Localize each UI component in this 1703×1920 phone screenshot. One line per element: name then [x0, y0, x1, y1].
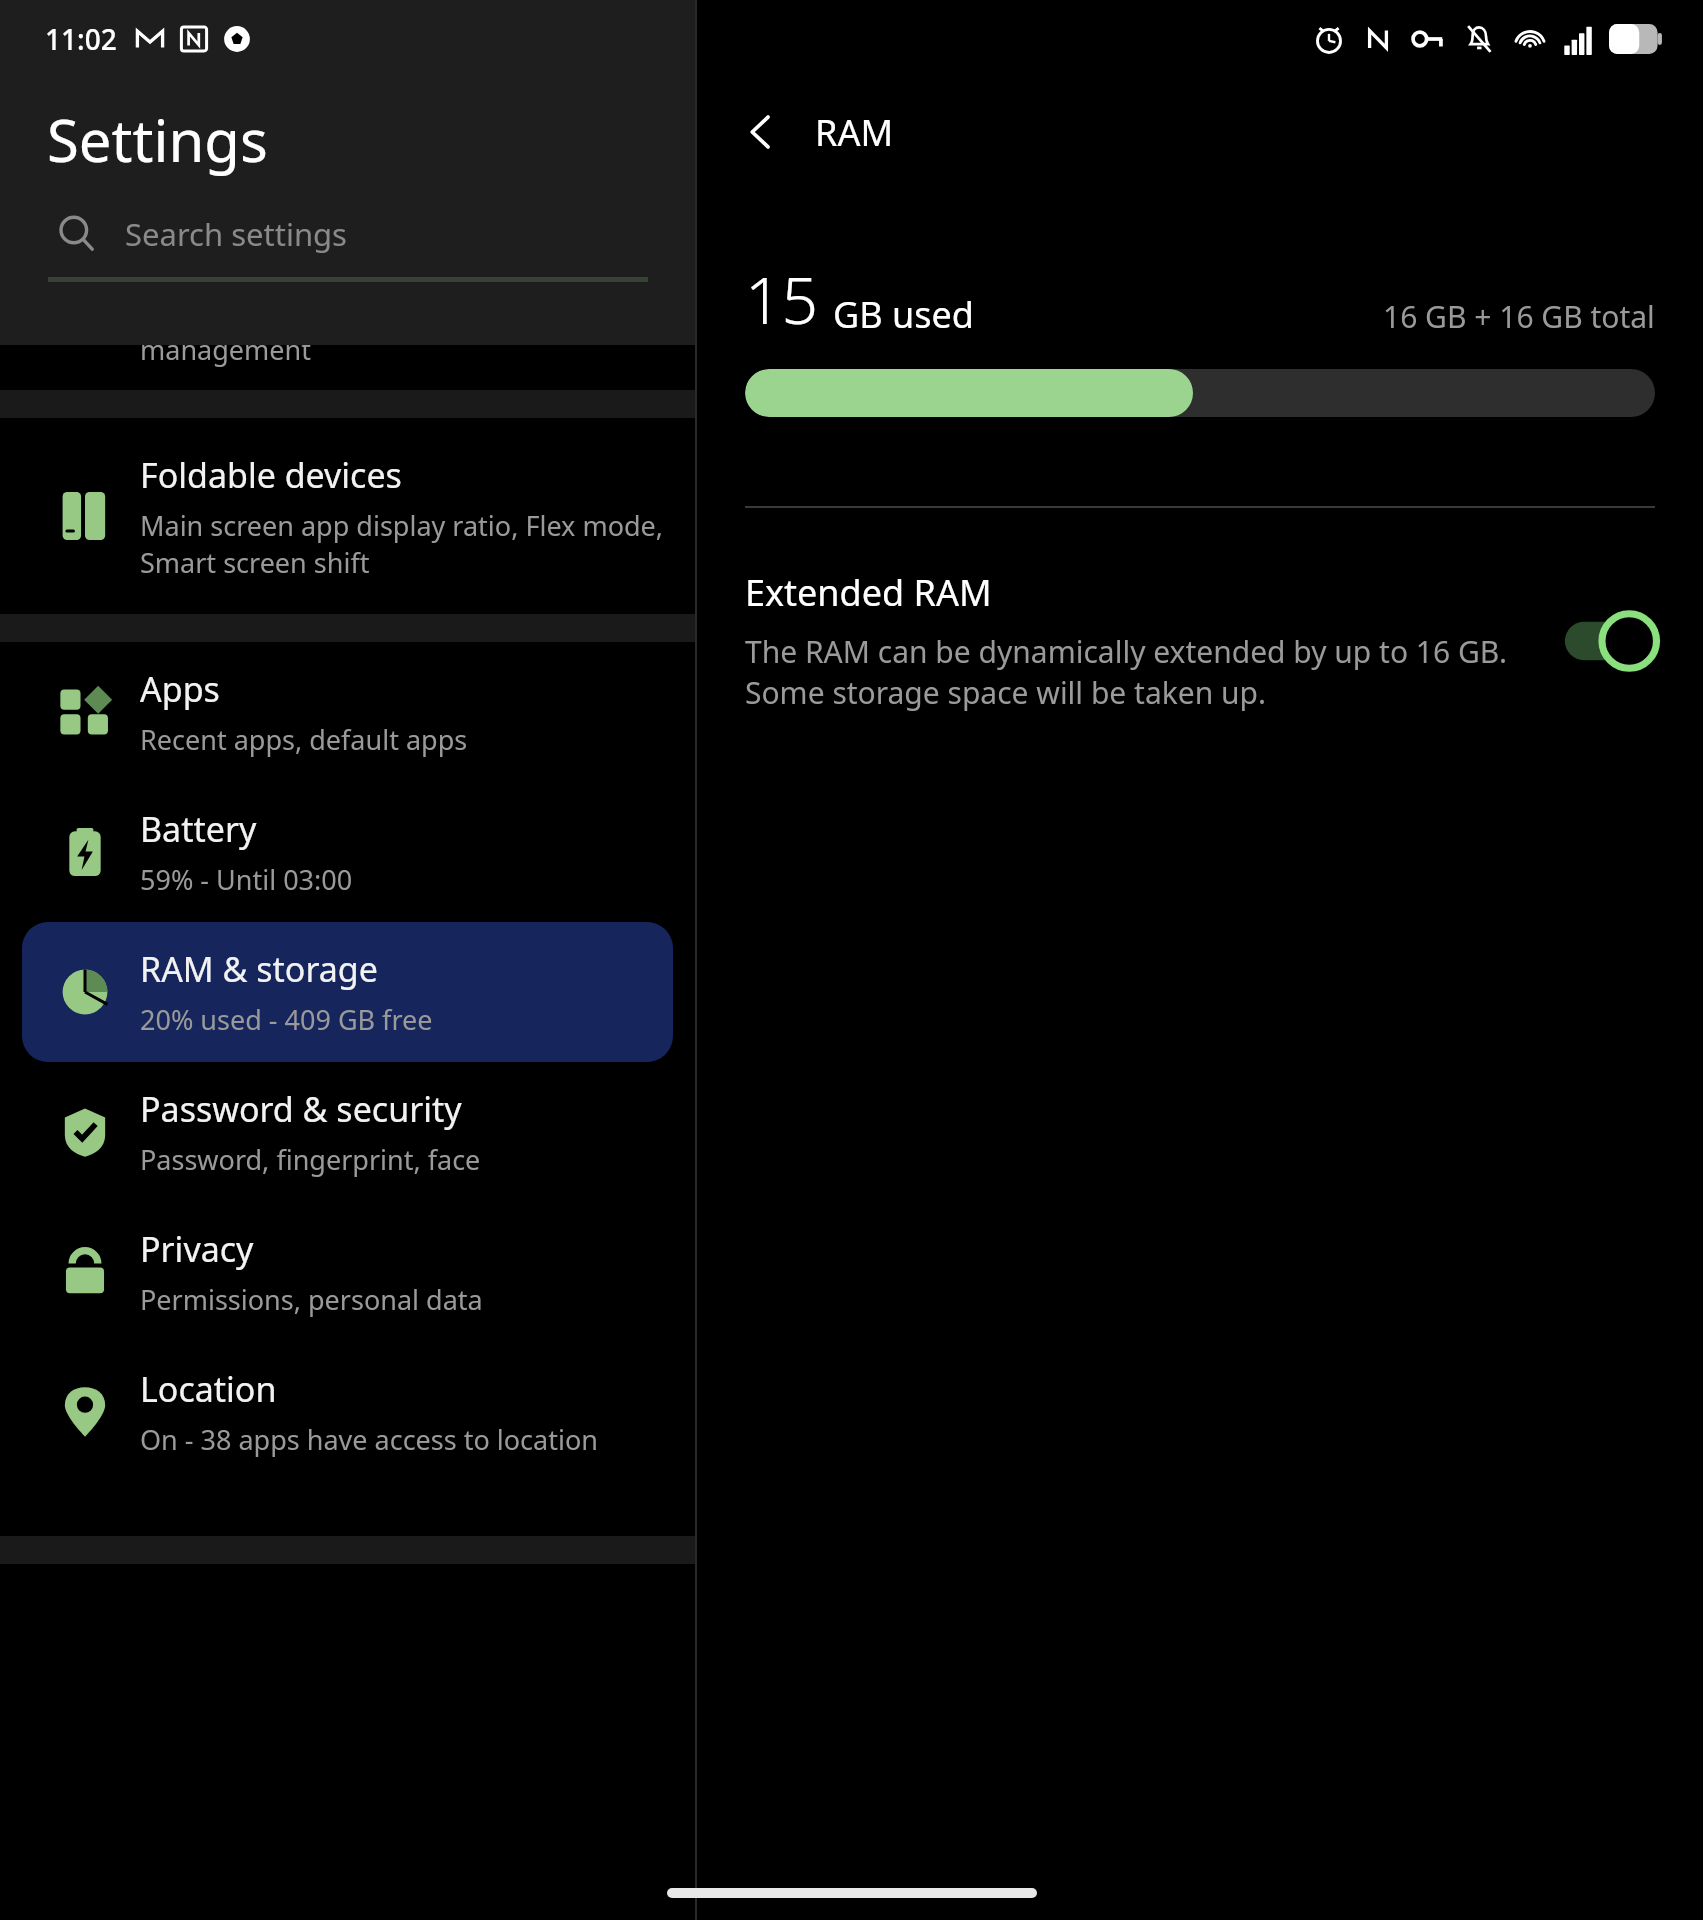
button[interactable]: Apps — [0, 642, 695, 782]
staticText: Password & security — [140, 1086, 462, 1132]
staticText: Apps — [140, 666, 220, 712]
staticText: 59% - Until 03:00 — [140, 861, 353, 898]
staticText: Location — [140, 1366, 277, 1412]
staticText: On - 38 apps have access to location — [140, 1421, 598, 1458]
staticText: 15 — [745, 256, 819, 343]
staticText: Settings — [47, 100, 268, 179]
button[interactable]: RAM & storage — [22, 922, 673, 1062]
staticText: Main screen app display ratio, Flex mode… — [140, 507, 664, 581]
staticText: 16 GB + 16 GB total — [1383, 296, 1655, 337]
staticText: Extended RAM — [745, 568, 992, 617]
staticText: 11:02 — [45, 20, 117, 58]
button[interactable]: Location — [0, 1342, 695, 1482]
staticText: Privacy — [140, 1226, 254, 1272]
button[interactable]: Battery — [0, 782, 695, 922]
staticText: Search settings — [125, 213, 347, 255]
staticText: Battery — [140, 806, 257, 852]
staticText: Foldable devices — [140, 452, 402, 498]
button[interactable]: Search settings — [0, 213, 695, 255]
staticText: Password, fingerprint, face — [140, 1141, 481, 1178]
button[interactable]: Foldable devices — [0, 418, 695, 614]
staticText: RAM — [815, 108, 894, 157]
staticText: RAM & storage — [140, 946, 378, 992]
staticText: Recent apps, default apps — [140, 721, 468, 758]
staticText: 20% used - 409 GB free — [140, 1001, 433, 1038]
button[interactable]: Password & security — [0, 1062, 695, 1202]
staticText: management — [140, 331, 311, 368]
button[interactable]: Extended RAM — [697, 568, 1703, 713]
button[interactable]: Privacy — [0, 1202, 695, 1342]
staticText: Permissions, personal data — [140, 1281, 483, 1318]
button[interactable]: Back — [725, 96, 797, 168]
staticText: The RAM can be dynamically extended by u… — [745, 631, 1539, 713]
staticText: GB used — [833, 290, 974, 339]
